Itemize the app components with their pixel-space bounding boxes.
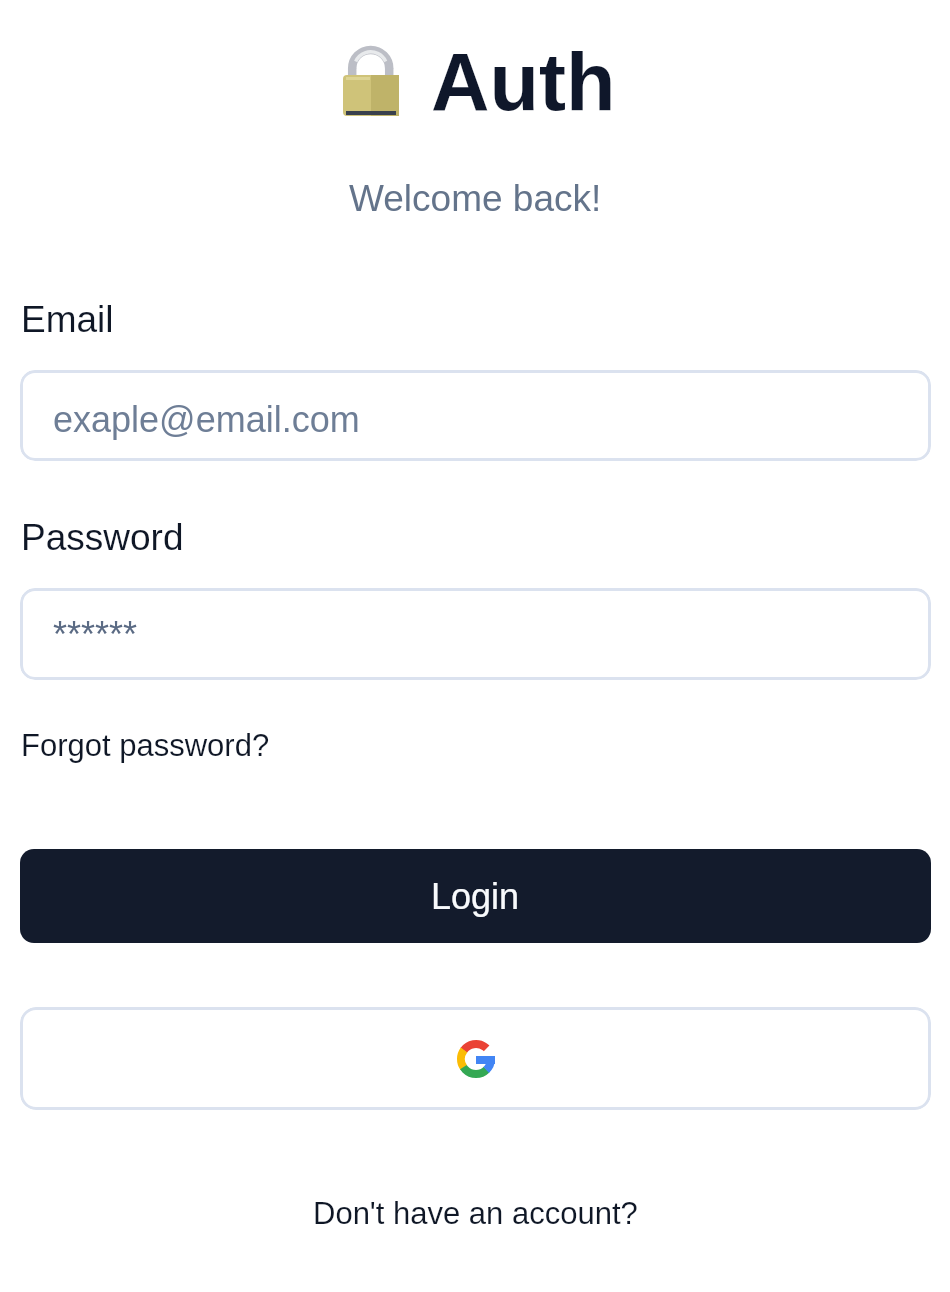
button[interactable]: exaple@email.com: [20, 370, 931, 461]
button[interactable]: [20, 1007, 931, 1110]
staticText: Auth: [431, 37, 616, 127]
button[interactable]: ******: [20, 588, 931, 680]
staticText: Email: [21, 299, 114, 340]
button[interactable]: Login: [20, 849, 931, 943]
staticText: Password: [21, 517, 184, 558]
staticText: ******: [53, 614, 138, 654]
staticText: Login: [431, 876, 520, 916]
button[interactable]: Forgot password?: [21, 728, 270, 763]
staticText: exaple@email.com: [53, 399, 360, 439]
button[interactable]: Don't have an account?: [313, 1196, 638, 1231]
staticText: Welcome back!: [349, 178, 602, 219]
